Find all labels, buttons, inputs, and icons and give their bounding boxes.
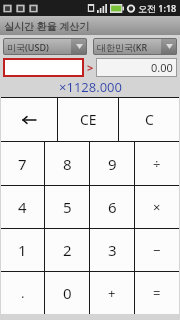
staticText: 8 bbox=[63, 154, 72, 174]
staticText: 3 bbox=[108, 240, 117, 260]
staticText: 5 bbox=[63, 197, 72, 217]
button[interactable] bbox=[3, 58, 84, 77]
button[interactable]: 8 bbox=[45, 142, 89, 185]
staticText: 9 bbox=[108, 154, 117, 174]
staticText: 실시간 환율 계산기 bbox=[4, 19, 90, 33]
button[interactable]: C bbox=[119, 98, 179, 141]
button[interactable]: Backspace bbox=[1, 98, 57, 141]
button[interactable]: . bbox=[1, 272, 44, 314]
button[interactable]: 7 bbox=[1, 142, 44, 185]
staticText: 6 bbox=[108, 197, 117, 217]
button[interactable]: ÷ bbox=[135, 142, 179, 185]
staticText: 오전 1:18 bbox=[138, 2, 177, 14]
staticText: + bbox=[108, 284, 116, 302]
button[interactable]: = bbox=[135, 272, 179, 314]
staticText: > bbox=[87, 60, 94, 75]
button[interactable]: 1 bbox=[1, 229, 44, 271]
button[interactable]: + bbox=[90, 272, 134, 314]
button[interactable]: 0 bbox=[45, 272, 89, 314]
staticText: . bbox=[21, 284, 25, 302]
button[interactable]: − bbox=[135, 229, 179, 271]
staticText: × bbox=[153, 198, 161, 216]
staticText: − bbox=[153, 241, 161, 259]
staticText: 미국(USD) bbox=[7, 41, 71, 53]
staticText: = bbox=[153, 284, 161, 302]
button[interactable]: 9 bbox=[90, 142, 134, 185]
staticText: 0 bbox=[63, 283, 72, 303]
staticText: 2 bbox=[63, 240, 72, 260]
button[interactable]: 5 bbox=[45, 186, 89, 228]
staticText: ÷ bbox=[153, 155, 161, 173]
button[interactable]: 0.00 bbox=[96, 58, 177, 77]
staticText: 0.00 bbox=[151, 60, 173, 75]
button[interactable]: 대한민국(KR bbox=[93, 38, 177, 55]
staticText: C bbox=[145, 110, 154, 129]
button[interactable]: 4 bbox=[1, 186, 44, 228]
button[interactable]: × bbox=[135, 186, 179, 228]
button[interactable]: CE bbox=[58, 98, 118, 141]
staticText: 대한민국(KR bbox=[97, 41, 161, 53]
button[interactable]: 미국(USD) bbox=[3, 38, 87, 55]
staticText: 1 bbox=[18, 240, 27, 260]
staticText: CE bbox=[80, 110, 97, 129]
staticText: 7 bbox=[18, 154, 27, 174]
button[interactable]: 3 bbox=[90, 229, 134, 271]
button[interactable]: 6 bbox=[90, 186, 134, 228]
button[interactable]: 2 bbox=[45, 229, 89, 271]
staticText: ×1128.000 bbox=[59, 78, 122, 96]
staticText: 4 bbox=[18, 197, 27, 217]
